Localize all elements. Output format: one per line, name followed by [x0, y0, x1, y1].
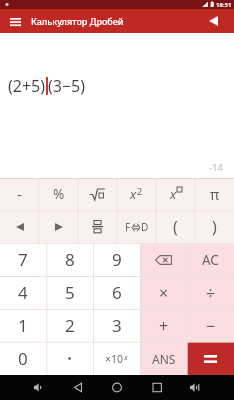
- staticText: (: [173, 216, 178, 238]
- staticText: 5: [65, 281, 75, 304]
- staticText: 18:51: [216, 1, 232, 9]
- staticText: π: [210, 185, 220, 204]
- staticText: 6: [112, 281, 122, 304]
- staticText: -: [17, 184, 22, 204]
- staticText: 7: [18, 248, 28, 271]
- staticText: AC: [202, 251, 219, 269]
- staticText: 8: [65, 248, 75, 271]
- staticText: +: [159, 315, 169, 337]
- staticText: ×10: [105, 352, 124, 366]
- staticText: 3: [112, 314, 122, 337]
- staticText: ): [212, 216, 217, 238]
- staticText: ANS: [152, 351, 176, 367]
- staticText: (2+5): [8, 75, 46, 97]
- staticText: −: [206, 315, 216, 337]
- staticText: F: [125, 220, 131, 234]
- staticText: 9: [112, 248, 122, 271]
- staticText: D: [141, 220, 149, 234]
- staticText: %: [53, 185, 65, 203]
- staticText: ÷: [206, 282, 216, 304]
- staticText: x: [124, 352, 128, 362]
- staticText: ×: [159, 282, 169, 304]
- staticText: 2: [65, 314, 75, 337]
- staticText: (3−5): [48, 75, 86, 97]
- staticText: 0: [18, 347, 28, 370]
- staticText: x: [130, 185, 137, 203]
- staticText: x: [170, 185, 177, 203]
- staticText: 1: [18, 314, 28, 337]
- staticText: 4: [18, 281, 28, 304]
- staticText: -14: [209, 161, 223, 174]
- staticText: 2: [137, 185, 143, 197]
- staticText: Калькулятор Дробей: [31, 15, 124, 27]
